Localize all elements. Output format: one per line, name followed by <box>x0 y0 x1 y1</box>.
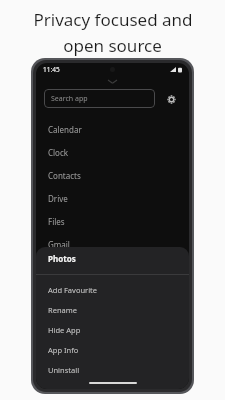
button[interactable]: Google <box>36 256 189 279</box>
staticText: Search app <box>51 94 88 104</box>
button[interactable]: Calendar <box>36 118 189 141</box>
button[interactable]: App Info <box>36 340 189 360</box>
staticText: Hide App <box>48 325 81 335</box>
staticText: 11:45 <box>43 65 60 74</box>
staticText: Add Favourite <box>48 285 98 295</box>
staticText: Clock <box>48 147 69 158</box>
staticText: Gmail <box>48 239 70 250</box>
staticText: Photos <box>48 253 76 264</box>
button[interactable]: Photos <box>36 247 189 270</box>
staticText: Privacy focused and <box>33 8 193 31</box>
button[interactable]: Settings <box>163 91 179 107</box>
button[interactable]: Drive <box>36 187 189 210</box>
button[interactable]: Contacts <box>36 164 189 187</box>
button[interactable]: Gmail <box>36 233 189 256</box>
button[interactable]: Hide App <box>36 320 189 340</box>
staticText: open source <box>63 34 162 57</box>
staticText: Rename <box>48 305 77 315</box>
button[interactable]: Rename <box>36 300 189 320</box>
button[interactable]: Files <box>36 210 189 233</box>
staticText: Calendar <box>48 124 82 135</box>
button[interactable]: Clock <box>36 141 189 164</box>
staticText: Drive <box>48 193 68 204</box>
button[interactable]: Uninstall <box>36 360 189 380</box>
staticText: Contacts <box>48 170 81 181</box>
button[interactable]: Add Favourite <box>36 280 189 300</box>
button[interactable]: Search app <box>44 89 155 108</box>
staticText: Uninstall <box>48 365 80 375</box>
staticText: App Info <box>48 345 79 355</box>
staticText: Files <box>48 216 65 227</box>
